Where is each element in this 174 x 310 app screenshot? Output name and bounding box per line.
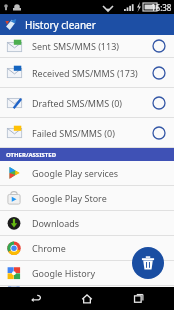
staticText: Google History: [32, 267, 174, 279]
button[interactable]: Back: [21, 287, 51, 310]
button[interactable]: Failed SMS/MMS (0): [0, 118, 174, 147]
staticText: OTHER/ASSISTED: [6, 151, 57, 159]
button[interactable]: Downloads: [0, 211, 174, 235]
button[interactable]: Google Play services: [0, 161, 174, 185]
button[interactable]: Google Play Store: [0, 186, 174, 210]
button[interactable]: Drafted SMS/MMS (0): [0, 88, 174, 117]
button[interactable]: Google Search: [0, 286, 174, 287]
button[interactable]: Google History: [0, 261, 174, 285]
staticText: Downloads: [32, 217, 174, 229]
button[interactable]: Recent apps: [123, 287, 153, 310]
button[interactable]: Sent SMS/MMS (113): [0, 35, 174, 57]
button[interactable]: Home: [72, 287, 102, 310]
staticText: Chrome: [32, 242, 174, 254]
staticText: Drafted SMS/MMS (0): [32, 97, 152, 109]
staticText: Google Play Store: [32, 192, 174, 204]
staticText: Google Play services: [32, 167, 174, 179]
staticText: History cleaner: [25, 18, 96, 32]
button[interactable]: Chrome: [0, 236, 174, 260]
button[interactable]: Delete selected history: [132, 247, 164, 279]
staticText: Sent SMS/MMS (113): [32, 40, 152, 52]
button[interactable]: History cleaner: [0, 14, 174, 35]
button[interactable]: Received SMS/MMS (173): [0, 58, 174, 87]
staticText: Failed SMS/MMS (0): [32, 127, 152, 139]
staticText: 16:38: [151, 2, 172, 13]
staticText: Received SMS/MMS (173): [32, 67, 152, 79]
